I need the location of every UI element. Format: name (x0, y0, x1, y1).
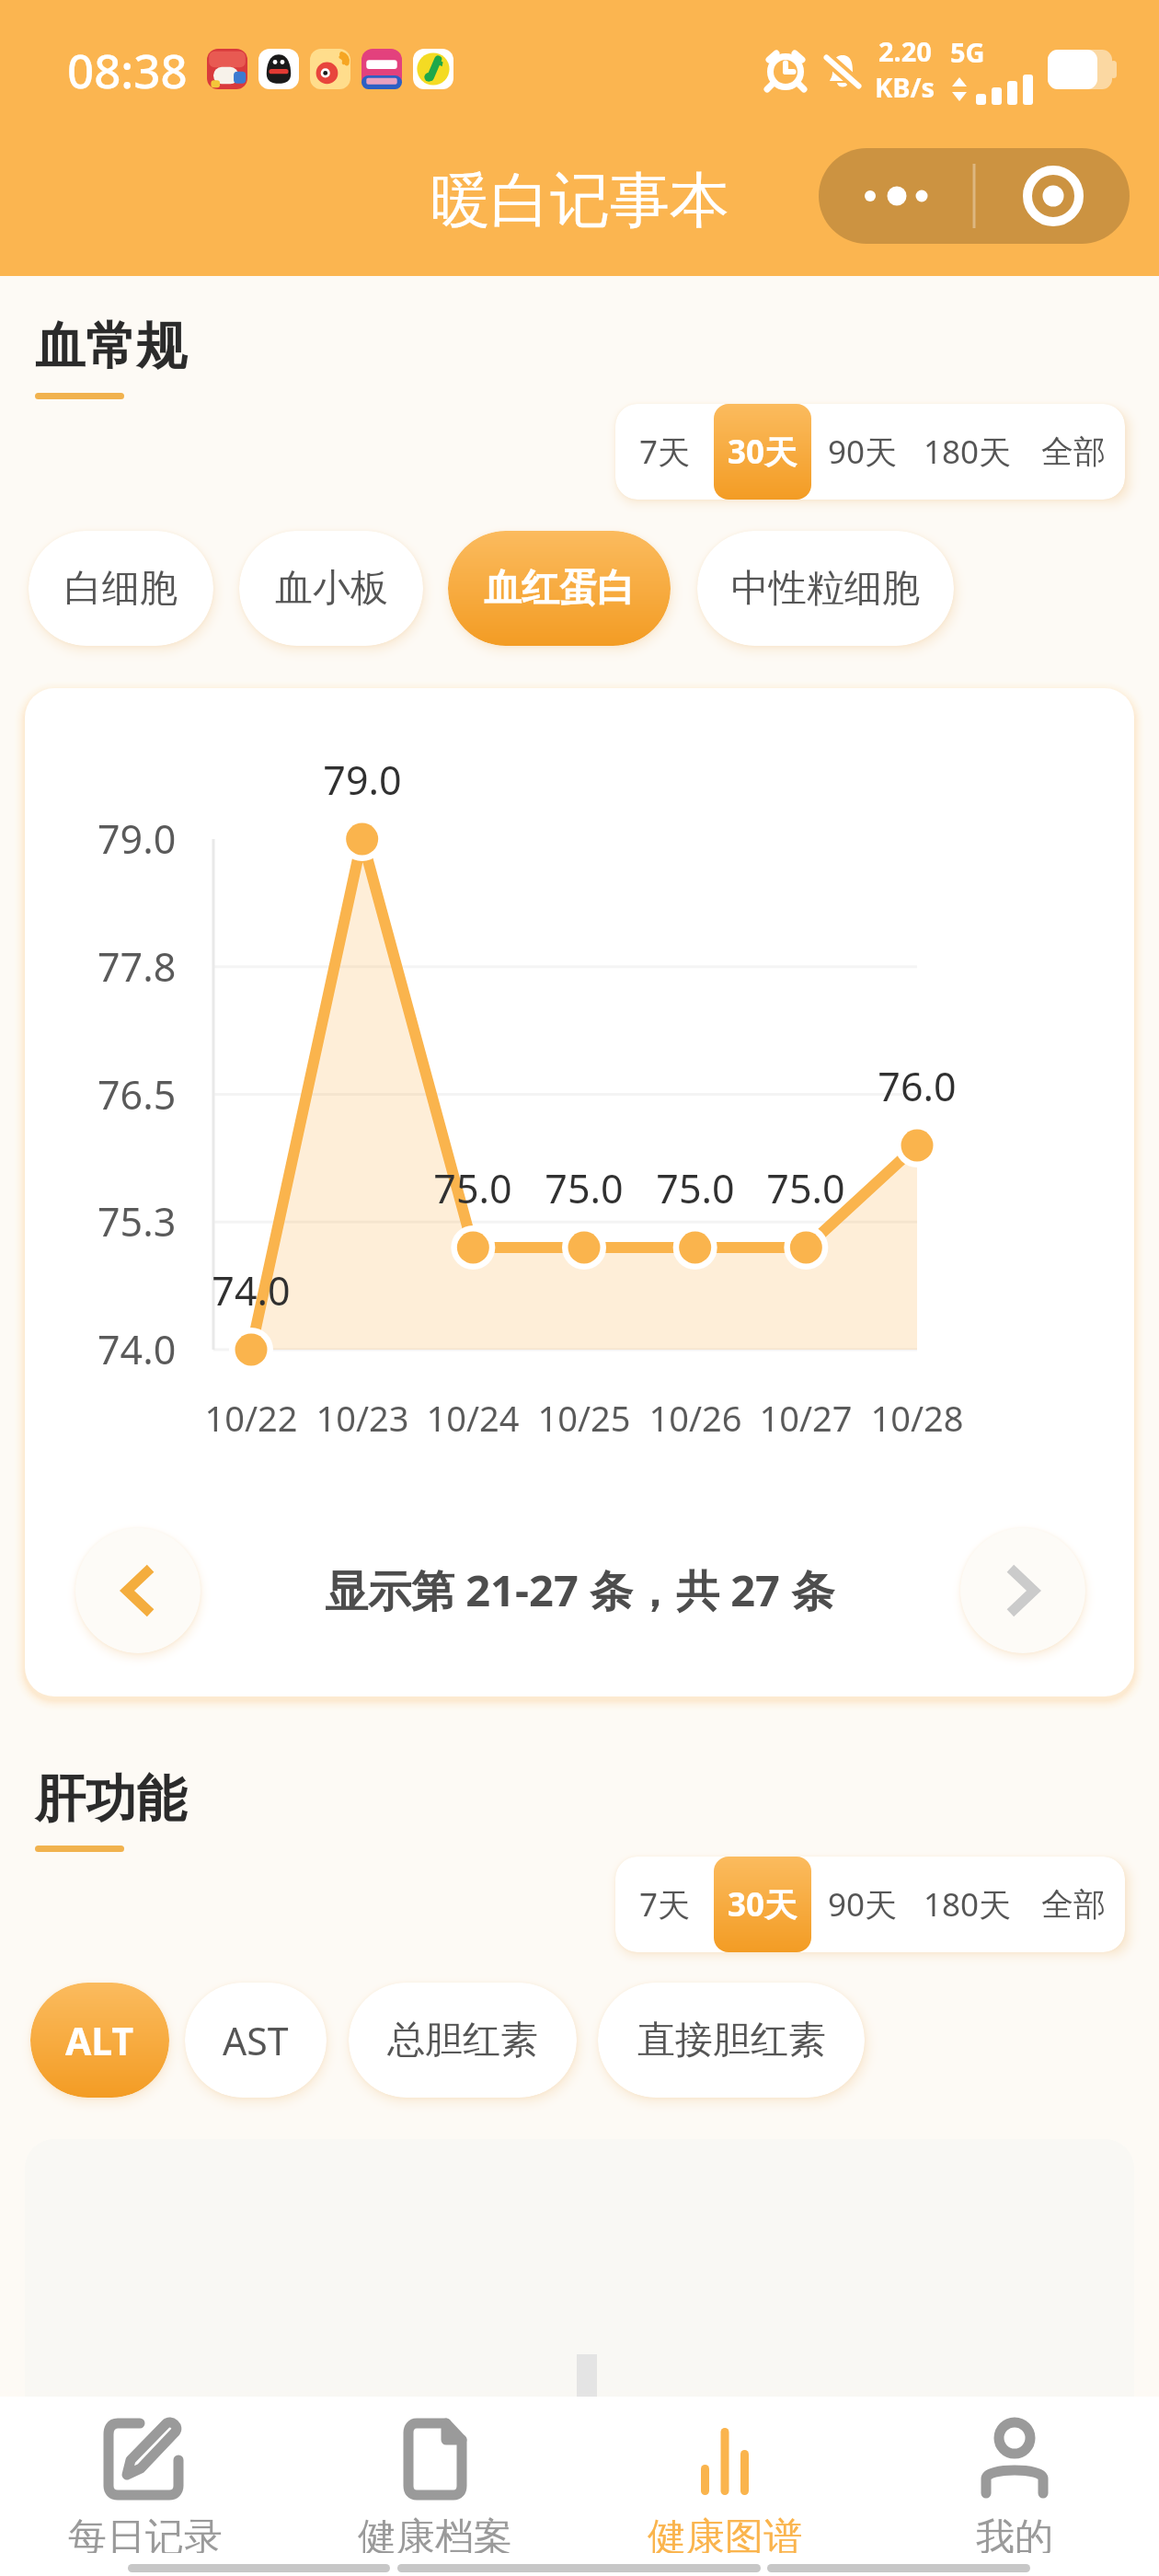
staticText: 血常规 (35, 315, 187, 378)
button[interactable]: 血红蛋白 (448, 531, 671, 646)
staticText: 10/24 (426, 1394, 520, 1442)
staticText: 74.0 (212, 1263, 291, 1317)
button[interactable]: Previous page (75, 1528, 201, 1653)
button[interactable]: 全部 (1021, 404, 1125, 500)
staticText: 08:38 (67, 38, 188, 101)
staticText: 总胆红素 (387, 2017, 538, 2064)
staticText: 75.0 (766, 1161, 845, 1215)
staticText: 90天 (828, 1882, 898, 1926)
staticText: 79.0 (98, 811, 177, 866)
button[interactable]: 全部 (1021, 1857, 1125, 1952)
staticText: 10/25 (537, 1394, 631, 1442)
button[interactable]: Next page (960, 1528, 1085, 1653)
button[interactable]: 我的 (869, 2412, 1159, 2553)
staticText: 7天 (639, 430, 691, 474)
staticText: 直接胆红素 (637, 2017, 826, 2064)
button[interactable]: More options (819, 148, 1130, 244)
staticText: 75.3 (98, 1194, 177, 1248)
staticText: 10/26 (648, 1394, 742, 1442)
staticText: 暖白记事本 (430, 163, 729, 238)
button[interactable]: 健康图谱 (579, 2412, 869, 2553)
staticText: 76.0 (878, 1059, 957, 1113)
staticText: 每日记录 (68, 2513, 223, 2553)
button[interactable]: 白细胞 (29, 531, 213, 646)
staticText: 全部 (1041, 431, 1106, 472)
button[interactable]: 180天 (914, 1857, 1021, 1952)
staticText: 30天 (728, 1882, 798, 1926)
staticText: 显示第 21-27 条，共 27 条 (325, 1560, 835, 1619)
staticText: 血红蛋白 (484, 565, 635, 613)
button[interactable]: 血小板 (239, 531, 423, 646)
staticText: 77.8 (98, 939, 177, 994)
button[interactable]: 7天 (615, 1857, 714, 1952)
staticText: 75.0 (433, 1161, 512, 1215)
button[interactable]: AST (185, 1983, 327, 2098)
staticText: 90天 (828, 430, 898, 474)
button[interactable]: 180天 (914, 404, 1021, 500)
button[interactable]: 中性粒细胞 (697, 531, 954, 646)
staticText: 肝功能 (35, 1767, 187, 1831)
button[interactable]: 90天 (811, 1857, 914, 1952)
staticText: 中性粒细胞 (731, 565, 920, 613)
staticText: 7天 (639, 1882, 691, 1926)
staticText: AST (223, 2015, 289, 2066)
staticText: 健康图谱 (648, 2513, 802, 2553)
staticText: KB/s (875, 69, 935, 105)
button[interactable]: 30天 (714, 1857, 811, 1952)
staticText: 79.0 (323, 753, 402, 807)
staticText: 10/22 (204, 1394, 298, 1442)
staticText: 76.5 (98, 1067, 177, 1121)
staticText: 10/28 (870, 1394, 964, 1442)
staticText: 全部 (1041, 1884, 1106, 1925)
button[interactable]: ALT (30, 1983, 169, 2098)
staticText: 我的 (976, 2513, 1053, 2553)
button[interactable]: 90天 (811, 404, 914, 500)
staticText: 30天 (728, 430, 798, 474)
staticText: 10/27 (759, 1394, 853, 1442)
button[interactable]: 30天 (714, 404, 811, 500)
staticText: 白细胞 (64, 565, 178, 613)
staticText: 健康档案 (358, 2513, 512, 2553)
staticText: 180天 (924, 430, 1012, 474)
button[interactable]: 每日记录 (0, 2412, 290, 2553)
button[interactable]: 健康档案 (290, 2412, 579, 2553)
staticText: 75.0 (656, 1161, 735, 1215)
staticText: 2.20 (878, 33, 932, 69)
staticText: 180天 (924, 1882, 1012, 1926)
button[interactable]: 7天 (615, 404, 714, 500)
staticText: 10/23 (316, 1394, 409, 1442)
staticText: 血小板 (275, 565, 388, 613)
staticText: 5G (950, 34, 985, 70)
staticText: ALT (65, 2015, 134, 2066)
staticText: 75.0 (545, 1161, 624, 1215)
staticText: 74.0 (98, 1322, 177, 1376)
button[interactable]: 直接胆红素 (598, 1983, 865, 2098)
button[interactable]: 总胆红素 (349, 1983, 577, 2098)
